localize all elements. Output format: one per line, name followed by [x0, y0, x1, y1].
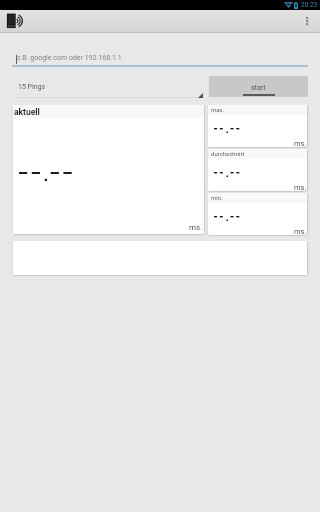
button[interactable]: 15 Pings [15, 83, 205, 98]
staticText: min. [211, 194, 223, 201]
staticText: ms. [294, 227, 307, 236]
staticText: ms. [294, 139, 307, 148]
button[interactable]: More options [298, 10, 320, 33]
button[interactable]: z.B. google.com oder 192.168.1.1 [12, 51, 308, 67]
staticText: max. [211, 106, 225, 113]
staticText: ms. [189, 223, 203, 232]
staticText: durchschnitt [211, 150, 245, 157]
button[interactable]: start [209, 76, 308, 97]
staticText: 20:23 [301, 1, 318, 9]
staticText: z.B. google.com oder 192.168.1.1 [17, 54, 122, 62]
staticText: ms. [294, 183, 307, 192]
staticText: start [251, 84, 266, 92]
staticText: 15 Pings [18, 83, 46, 91]
staticText: aktuell [14, 107, 40, 117]
